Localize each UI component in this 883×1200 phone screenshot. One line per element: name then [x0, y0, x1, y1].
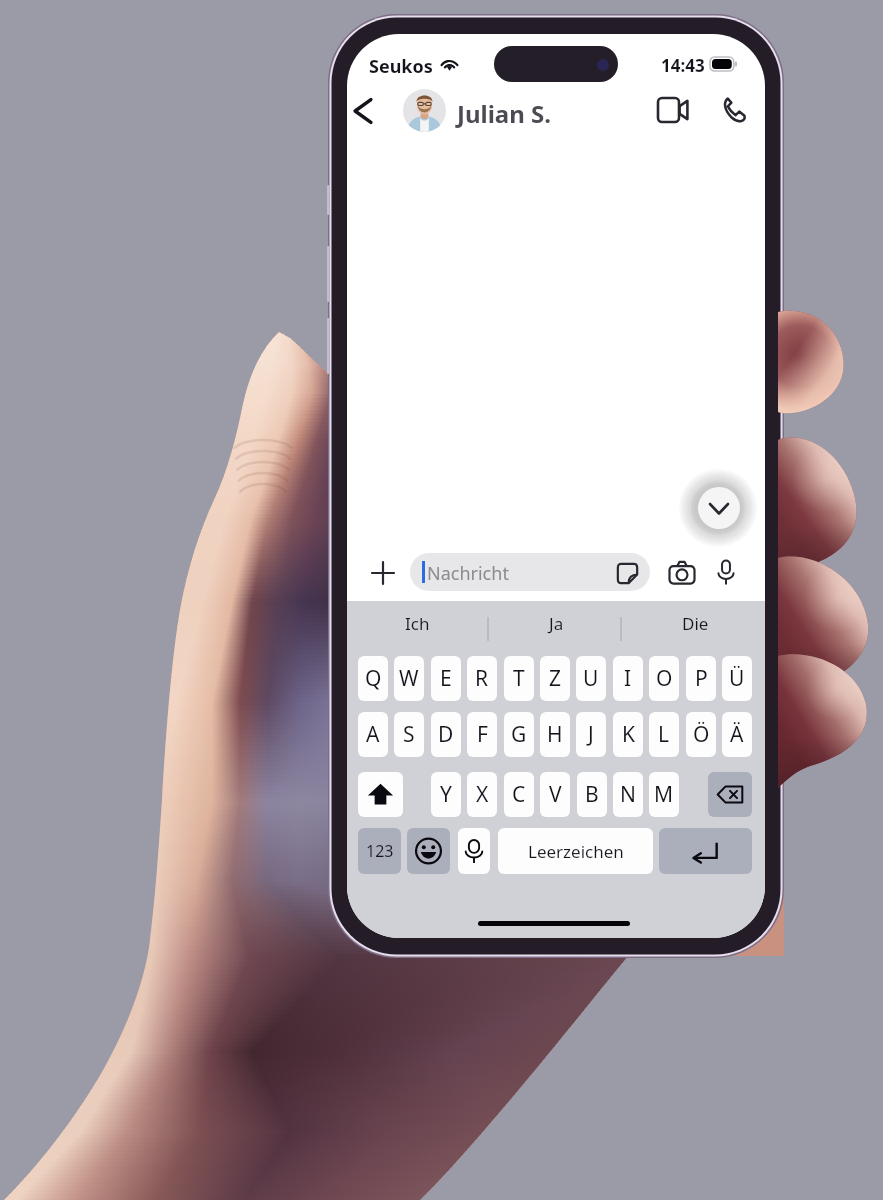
button[interactable]: Ö — [686, 712, 716, 757]
staticText: T — [513, 664, 525, 693]
staticText: X — [476, 780, 489, 809]
staticText: 123 — [366, 840, 394, 862]
staticText: N — [620, 780, 636, 809]
staticText: Seukos — [369, 54, 433, 79]
staticText: M — [654, 780, 674, 809]
button[interactable]: W — [394, 656, 424, 701]
staticText: 14:43 — [661, 54, 705, 77]
staticText: U — [583, 664, 599, 693]
button[interactable]: Ü — [722, 656, 752, 701]
staticText: C — [512, 780, 526, 809]
button[interactable]: X — [467, 772, 497, 817]
button[interactable]: I — [613, 656, 643, 701]
button[interactable]: A — [358, 712, 388, 757]
button[interactable]: Emoji — [407, 828, 450, 874]
staticText: W — [399, 664, 419, 693]
button[interactable]: Enter — [659, 828, 752, 874]
staticText: K — [622, 720, 635, 749]
staticText: I — [624, 664, 632, 693]
staticText: F — [477, 720, 488, 749]
button[interactable]: Camera — [669, 561, 695, 584]
button[interactable]: Back — [352, 98, 374, 124]
staticText: Y — [440, 780, 452, 809]
button[interactable]: G — [504, 712, 534, 757]
staticText: V — [549, 780, 562, 809]
button[interactable]: B — [577, 772, 607, 817]
button[interactable]: D — [431, 712, 461, 757]
button[interactable]: H — [540, 712, 570, 757]
staticText: J — [588, 720, 594, 749]
staticText: Ä — [730, 720, 744, 749]
staticText: O — [656, 664, 673, 693]
staticText: R — [475, 664, 489, 693]
staticText: B — [585, 780, 599, 809]
button[interactable]: U — [576, 656, 606, 701]
staticText: A — [366, 720, 380, 749]
staticText: D — [438, 720, 454, 749]
staticText: Q — [365, 664, 382, 693]
button[interactable]: Add attachment — [372, 562, 394, 584]
button[interactable]: O — [649, 656, 679, 701]
staticText: S — [403, 720, 415, 749]
button[interactable]: J — [576, 712, 606, 757]
button[interactable]: Z — [540, 656, 570, 701]
staticText: Ü — [729, 664, 745, 693]
staticText: E — [440, 664, 452, 693]
button[interactable]: K — [613, 712, 643, 757]
button[interactable]: Y — [431, 772, 461, 817]
button[interactable]: Julian S. — [457, 97, 552, 130]
staticText: H — [547, 720, 563, 749]
button[interactable]: Dictate — [458, 828, 490, 874]
button[interactable]: Voice call — [720, 97, 746, 123]
staticText: Ö — [693, 720, 710, 749]
button[interactable] — [410, 553, 650, 591]
button[interactable]: Video call — [658, 98, 688, 122]
button[interactable]: Ich — [347, 601, 487, 645]
button[interactable]: Profile photo — [403, 89, 446, 132]
staticText: Ja — [549, 612, 564, 635]
button[interactable]: Die — [626, 601, 765, 645]
button[interactable]: F — [467, 712, 497, 757]
button[interactable]: Backspace — [708, 772, 752, 817]
button[interactable]: N — [613, 772, 643, 817]
button[interactable]: Stickers — [617, 563, 638, 584]
button[interactable]: P — [686, 656, 716, 701]
button[interactable]: Ja — [487, 601, 626, 645]
button[interactable]: Q — [358, 656, 388, 701]
staticText: G — [511, 720, 527, 749]
staticText: Leerzeichen — [528, 840, 624, 863]
staticText: Nachricht — [427, 561, 509, 586]
button[interactable]: Leerzeichen — [498, 828, 653, 874]
staticText: L — [658, 720, 670, 749]
button[interactable]: Ä — [722, 712, 752, 757]
staticText: P — [695, 664, 708, 693]
button[interactable]: Voice message — [717, 560, 735, 585]
button[interactable]: T — [504, 656, 534, 701]
staticText: Ich — [405, 612, 430, 635]
button[interactable]: C — [504, 772, 534, 817]
staticText: Die — [682, 612, 709, 635]
button[interactable]: S — [394, 712, 424, 757]
button[interactable]: R — [467, 656, 497, 701]
button[interactable]: Scroll to bottom — [679, 468, 757, 546]
button[interactable]: Numbers — [358, 828, 401, 874]
button[interactable]: M — [649, 772, 679, 817]
button[interactable]: Shift — [358, 772, 403, 817]
button[interactable]: L — [649, 712, 679, 757]
button[interactable]: E — [431, 656, 461, 701]
button[interactable]: V — [540, 772, 570, 817]
staticText: Z — [549, 664, 562, 693]
